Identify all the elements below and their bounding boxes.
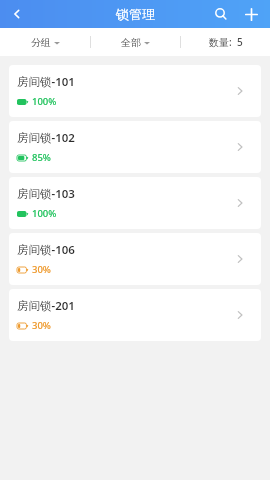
button[interactable]: Search [206,0,236,28]
staticText: 85% [32,151,51,164]
staticText: 30% [32,263,51,276]
button[interactable]: 房间锁-201 [9,289,261,341]
button[interactable]: 房间锁-103 [9,177,261,229]
staticText: 锁管理 [116,6,155,22]
staticText: 100% [32,207,57,220]
button[interactable]: Add [236,0,266,28]
staticText: 房间锁-106 [17,242,75,258]
staticText: 30% [32,319,51,332]
button[interactable]: 房间锁-101 [9,65,261,117]
staticText: 全部 [121,36,141,49]
staticText: 房间锁-103 [17,186,75,202]
staticText: 100% [32,95,57,108]
staticText: 房间锁-102 [17,130,75,146]
button[interactable]: 房间锁-102 [9,121,261,173]
button[interactable]: 全部 [91,28,180,56]
staticText: 数量: [209,35,232,49]
staticText: 5 [237,35,243,49]
staticText: 房间锁-201 [17,298,75,314]
button[interactable]: 分组 [0,28,90,56]
staticText: 房间锁-101 [17,74,75,90]
button[interactable]: Back [0,0,34,28]
staticText: 分组 [31,36,51,49]
button[interactable]: 房间锁-106 [9,233,261,285]
